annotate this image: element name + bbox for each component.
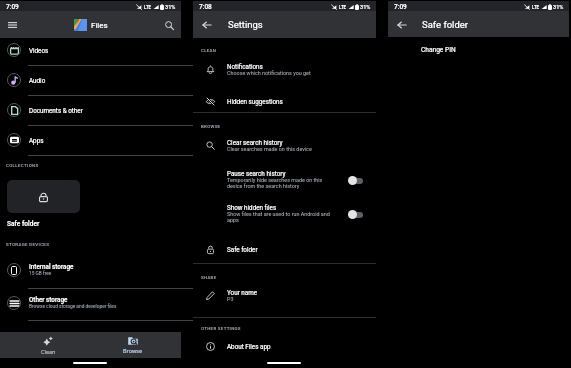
staticText: SHARE (201, 275, 217, 280)
button[interactable]: Show hidden files (193, 204, 376, 224)
staticText: Settings (228, 19, 263, 30)
staticText: STORAGE DEVICES (6, 242, 50, 247)
staticText: Browse cloud storage and developer files (29, 304, 117, 310)
staticText: About Files app (227, 343, 271, 350)
button[interactable]: Back (394, 17, 409, 32)
staticText: 7:08 (199, 3, 212, 11)
staticText: Safe folder (7, 220, 40, 228)
staticText: CLEAN (201, 48, 217, 53)
staticText: Pause search history (227, 170, 286, 177)
staticText: 31% (360, 4, 371, 10)
staticText: Clean (41, 348, 56, 355)
button[interactable]: Videos (0, 35, 181, 65)
button[interactable]: Internal storage (0, 256, 181, 284)
button[interactable] (7, 180, 80, 213)
staticText: Browse (123, 347, 143, 354)
staticText: Audio (29, 77, 46, 84)
button[interactable]: Notifications (193, 62, 376, 77)
button[interactable]: Browse (90, 332, 175, 358)
staticText: 15 GB free (29, 271, 52, 277)
staticText: Apps (29, 137, 44, 144)
staticText: Videos (29, 47, 49, 54)
staticText: BROWSE (201, 124, 221, 129)
staticText: 31% (165, 4, 176, 10)
staticText: Documents & other (29, 107, 83, 114)
button[interactable]: About Files app (193, 341, 376, 352)
staticText: LTE (144, 5, 152, 10)
staticText: Temporarily hide searches made on this d… (227, 177, 323, 190)
staticText: Clear search history (227, 139, 283, 146)
staticText: Other storage (29, 296, 68, 303)
staticText: Show hidden files (227, 204, 277, 211)
staticText: Your name (227, 289, 258, 296)
staticText: LTE (339, 5, 347, 10)
button[interactable]: Back (199, 17, 215, 33)
button[interactable]: Apps (0, 125, 181, 155)
staticText: 31% (553, 4, 564, 10)
staticText: 7:09 (394, 3, 407, 11)
button[interactable]: Audio (0, 65, 181, 95)
button[interactable]: Your name (193, 288, 376, 303)
staticText: Internal storage (29, 263, 74, 270)
button[interactable]: Safe folder (193, 244, 376, 255)
button[interactable]: Search (160, 16, 178, 34)
staticText: Hidden suggestions (227, 98, 283, 105)
staticText: P3 (227, 296, 234, 302)
staticText: Choose which notifications you get (227, 70, 311, 76)
button[interactable]: Clean (6, 332, 90, 358)
staticText: Show files that are used to run Android … (227, 211, 330, 224)
staticText: Safe folder (227, 246, 258, 253)
staticText: OTHER SETTINGS (201, 326, 241, 331)
staticText: Clear searches made on this device (227, 146, 312, 152)
button[interactable]: Clear search history (193, 138, 376, 153)
button[interactable]: Change PIN (388, 45, 569, 58)
staticText: Change PIN (421, 46, 456, 54)
staticText: Notifications (227, 63, 263, 70)
staticText: Files (91, 21, 108, 30)
staticText: Safe folder (422, 19, 469, 30)
staticText: COLLECTIONS (6, 163, 39, 168)
button[interactable]: Menu (3, 16, 21, 34)
button[interactable]: Hidden suggestions (193, 96, 376, 107)
button[interactable]: Documents & other (0, 95, 181, 125)
staticText: LTE (532, 5, 540, 10)
button[interactable]: Other storage (0, 289, 181, 317)
button[interactable]: Pause search history (193, 170, 376, 190)
staticText: 7:09 (6, 3, 19, 11)
